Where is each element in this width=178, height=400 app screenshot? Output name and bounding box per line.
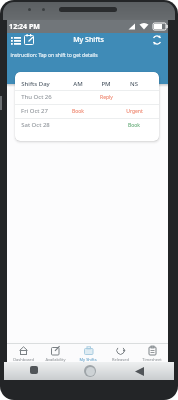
- button[interactable]: [30, 366, 38, 374]
- button[interactable]: Timesheet: [136, 342, 168, 361]
- staticText: Shifts Day: [21, 80, 50, 88]
- button[interactable]: [84, 365, 96, 377]
- staticText: AM: [73, 80, 83, 88]
- button[interactable]: Thu Oct 26: [15, 90, 159, 104]
- button[interactable]: [152, 35, 162, 45]
- button[interactable]: Availability: [39, 342, 71, 361]
- staticText: My Shifts: [79, 357, 97, 362]
- button[interactable]: Fri Oct 27: [15, 104, 159, 118]
- staticText: Sat Oct 28: [21, 121, 50, 129]
- staticText: NS: [130, 80, 138, 88]
- staticText: My Shifts: [73, 35, 104, 45]
- button[interactable]: [24, 34, 35, 46]
- button[interactable]: My Shifts: [72, 342, 104, 361]
- staticText: instruction: Tap on shift to get details: [10, 52, 98, 59]
- staticText: Urgent: [126, 108, 143, 115]
- button[interactable]: Sat Oct 28: [15, 118, 159, 132]
- button[interactable]: [11, 35, 21, 45]
- staticText: Dashboard: [13, 357, 34, 362]
- staticText: Reply: [100, 94, 113, 101]
- staticText: Released: [112, 357, 129, 362]
- button[interactable]: [135, 367, 144, 376]
- staticText: Book: [72, 108, 84, 115]
- staticText: PM: [101, 80, 111, 88]
- staticText: Fri Oct 27: [21, 107, 48, 115]
- staticText: 12:24 PM: [9, 22, 40, 32]
- button[interactable]: Dashboard: [7, 342, 39, 361]
- button[interactable]: Released: [104, 342, 136, 361]
- staticText: Timesheet: [142, 357, 162, 362]
- staticText: Book: [128, 122, 140, 129]
- staticText: Thu Oct 26: [21, 93, 52, 101]
- staticText: Availability: [45, 357, 66, 362]
